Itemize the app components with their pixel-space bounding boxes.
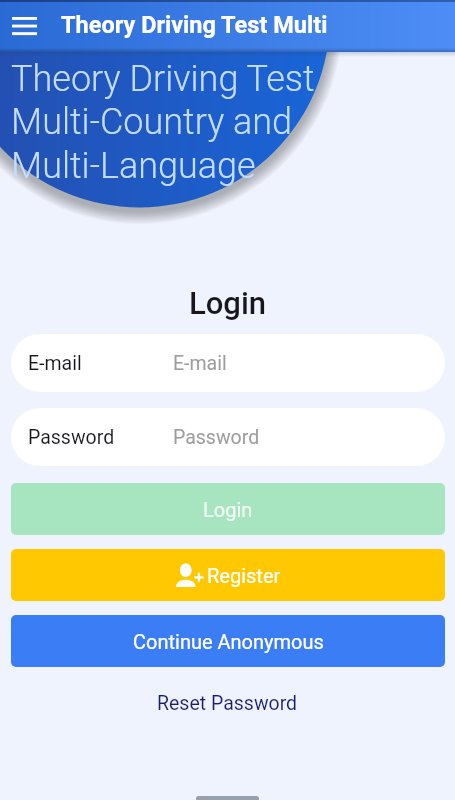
staticText: Login <box>203 498 253 521</box>
button[interactable]: Open navigation menu <box>2 4 46 48</box>
staticText: Password <box>28 426 115 449</box>
staticText: Register <box>207 564 281 587</box>
button[interactable]: Reset Password <box>0 680 455 726</box>
staticText: Reset Password <box>157 692 298 715</box>
button[interactable]: Continue Anonymous <box>11 615 445 667</box>
staticText: Password <box>173 426 260 449</box>
staticText: Continue Anonymous <box>133 630 324 653</box>
button[interactable]: E-mail <box>11 334 445 392</box>
staticText: Theory Driving Test Multi-Country and Mu… <box>11 58 315 187</box>
button[interactable]: Login <box>11 483 445 535</box>
staticText: Login <box>0 285 455 321</box>
button[interactable]: Register <box>11 549 445 601</box>
staticText: E-mail <box>28 352 82 375</box>
staticText: E-mail <box>173 352 227 375</box>
button[interactable]: Password <box>11 408 445 466</box>
staticText: Theory Driving Test Multi <box>61 11 328 39</box>
